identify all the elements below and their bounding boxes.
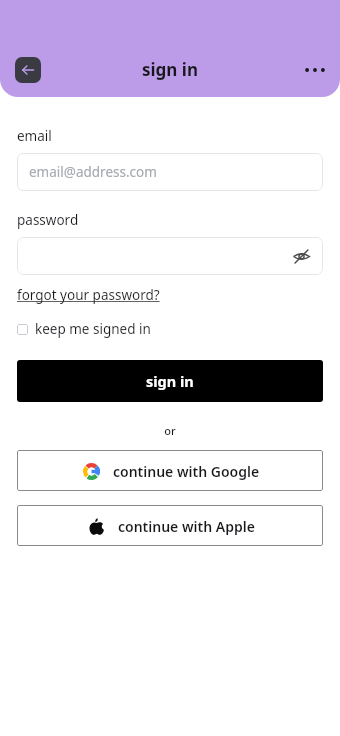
button[interactable]: email@address.com [17,153,323,191]
staticText: or [17,423,323,438]
button[interactable]: keep me signed in [17,320,151,338]
staticText: email [17,127,52,145]
button[interactable]: sign in [17,360,323,402]
staticText: continue with Apple [118,517,255,536]
staticText: password [17,211,79,229]
button[interactable]: forgot your password? [17,286,160,304]
staticText: forgot your password? [17,286,160,304]
button[interactable]: More options [298,53,332,87]
staticText: sign in [142,58,198,81]
staticText: keep me signed in [35,320,151,338]
staticText: email@address.com [29,163,157,181]
button[interactable]: continue with Apple [17,505,323,546]
button[interactable]: Show password [287,242,315,270]
staticText: continue with Google [113,462,260,481]
button[interactable]: continue with Google [17,450,323,491]
staticText: sign in [146,371,194,391]
button[interactable]: Show password [17,237,323,275]
button[interactable]: Back [15,57,41,83]
